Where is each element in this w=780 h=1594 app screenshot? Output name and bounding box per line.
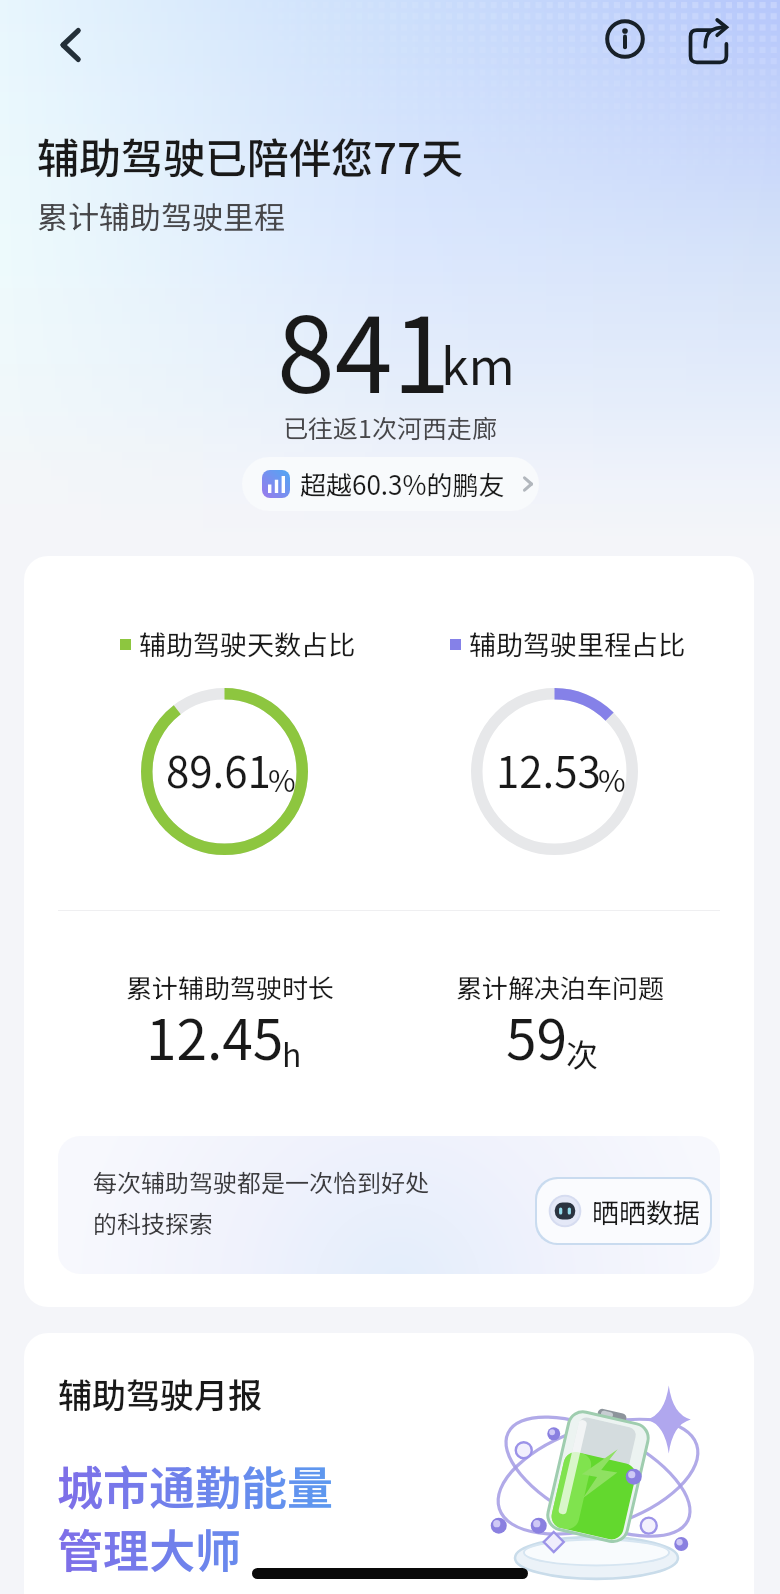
- staticText: 12.45: [146, 996, 284, 1076]
- staticText: 已往返1次河西走廊: [283, 409, 497, 445]
- staticText: 累计解决泊车问题: [456, 968, 665, 1006]
- staticText: 晒晒数据: [592, 1192, 700, 1231]
- staticText: 超越60.3%的鹏友: [300, 465, 505, 503]
- staticText: 89.61: [166, 739, 271, 800]
- staticText: 每次辅助驾驶都是一次恰到好处 的科技探索: [93, 1164, 429, 1240]
- button[interactable]: 辅助驾驶月报: [24, 1333, 754, 1594]
- staticText: 次: [566, 1030, 599, 1076]
- staticText: km: [441, 327, 515, 399]
- staticText: 59: [506, 996, 568, 1076]
- staticText: 841: [277, 272, 451, 423]
- staticText: 累计辅助驾驶时长: [126, 968, 335, 1006]
- staticText: 辅助驾驶月报: [58, 1369, 262, 1418]
- staticText: 累计辅助驾驶里程: [37, 193, 285, 238]
- staticText: h: [282, 1030, 302, 1076]
- staticText: %: [598, 757, 626, 800]
- button[interactable]: Info: [593, 7, 657, 71]
- staticText: 辅助驾驶已陪伴您77天: [37, 125, 463, 186]
- staticText: 辅助驾驶天数占比: [139, 624, 355, 663]
- button[interactable]: Share: [676, 11, 740, 75]
- button[interactable]: Back: [40, 14, 102, 76]
- button[interactable]: 晒晒数据: [537, 1179, 710, 1243]
- button[interactable]: 超越60.3%的鹏友: [242, 457, 539, 511]
- staticText: %: [268, 757, 296, 800]
- staticText: 12.53: [496, 739, 601, 800]
- staticText: 辅助驾驶里程占比: [469, 624, 685, 663]
- staticText: 城市通勤能量 管理大师: [57, 1452, 333, 1581]
